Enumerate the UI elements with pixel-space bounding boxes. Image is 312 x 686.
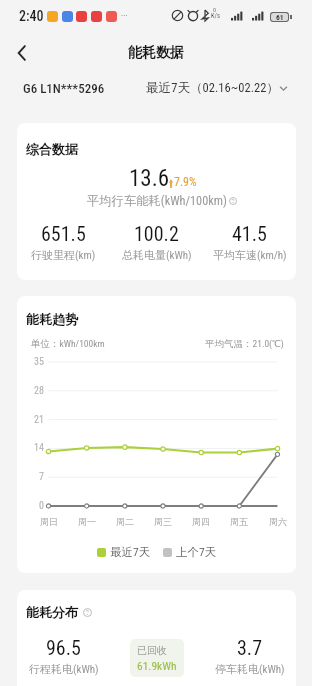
- staticText: 0: [39, 500, 44, 512]
- staticText: 14: [34, 442, 44, 454]
- staticText: 3.7: [237, 636, 263, 659]
- staticText: ···: [121, 11, 128, 22]
- staticText: 100.2: [134, 222, 179, 245]
- staticText: 周二: [116, 516, 134, 527]
- button[interactable]: Back: [0, 33, 44, 73]
- staticText: 7.9%: [174, 175, 197, 189]
- staticText: 最近7天: [110, 545, 151, 559]
- staticText: 周日: [40, 516, 58, 527]
- staticText: 周六: [269, 516, 287, 527]
- staticText: 35: [34, 356, 44, 368]
- button[interactable]: 最近7天（02.16~02.22）: [146, 80, 288, 96]
- staticText: 周四: [192, 516, 210, 527]
- staticText: 周一: [78, 516, 96, 527]
- staticText: 最近7天（02.16~02.22）: [146, 80, 279, 96]
- staticText: 96.5: [46, 636, 81, 659]
- staticText: 单位：kWh/100km: [31, 338, 105, 350]
- staticText: 61.9kWh: [137, 659, 177, 672]
- staticText: 651.5: [41, 222, 86, 245]
- staticText: 平均车速(km/h): [213, 248, 287, 262]
- staticText: 41.5: [232, 222, 267, 245]
- staticText: 行程耗电(kWh): [29, 662, 99, 676]
- staticText: 13.6: [129, 165, 170, 192]
- staticText: 0: [213, 6, 216, 13]
- staticText: 能耗数据: [128, 44, 184, 62]
- staticText: 行驶里程(km): [31, 248, 96, 262]
- staticText: 已回收: [137, 644, 167, 657]
- staticText: 平均行车能耗(kWh/100km): [87, 193, 227, 208]
- staticText: K/s: [211, 12, 220, 20]
- staticText: 总耗电量(kWh): [122, 248, 192, 262]
- staticText: 周五: [230, 516, 248, 527]
- staticText: G6 L1N***5296: [23, 81, 105, 96]
- staticText: 能耗分布: [26, 604, 78, 620]
- staticText: 平均气温：21.0(℃): [205, 338, 284, 350]
- staticText: 综合数据: [26, 141, 78, 157]
- staticText: 21: [34, 414, 44, 426]
- staticText: 7: [39, 471, 44, 483]
- staticText: 能耗趋势: [26, 311, 78, 327]
- staticText: 上个7天: [176, 545, 217, 559]
- staticText: 周三: [154, 516, 172, 527]
- staticText: 28: [34, 385, 44, 397]
- staticText: 61: [276, 13, 284, 21]
- staticText: 2:40: [19, 8, 44, 24]
- staticText: 停车耗电(kWh): [215, 662, 285, 676]
